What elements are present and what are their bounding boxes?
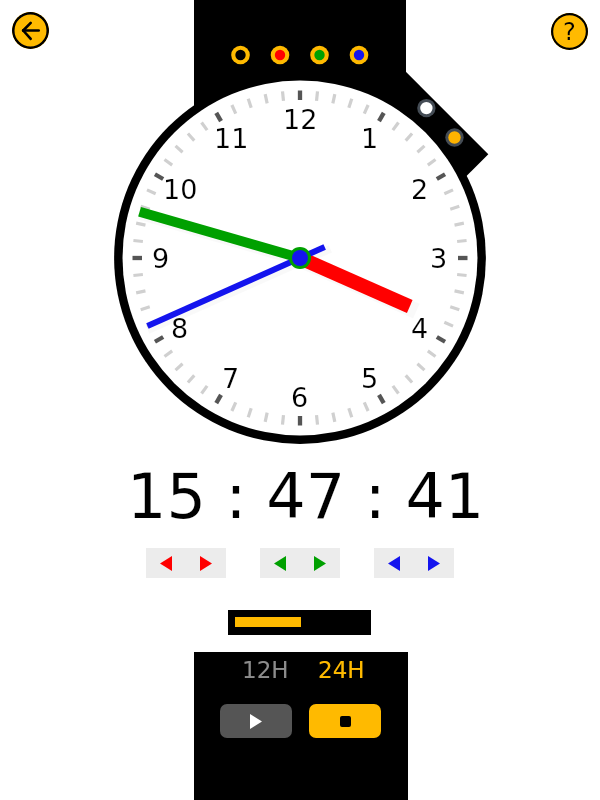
button[interactable]: Decrease	[260, 548, 300, 578]
button[interactable]: Decrease	[374, 548, 414, 578]
button[interactable]: 24H	[314, 653, 369, 688]
staticText: 15 : 47 : 41	[127, 460, 485, 532]
button[interactable]: Back	[12, 12, 49, 49]
staticText: 8	[171, 313, 189, 344]
staticText: 4	[411, 313, 429, 344]
staticText: 6	[291, 382, 309, 413]
staticText: 24H	[318, 657, 365, 684]
button[interactable]: Increase	[300, 548, 340, 578]
button[interactable]: Increase	[414, 548, 454, 578]
button[interactable]: 12H	[238, 653, 293, 688]
button[interactable]: Stop	[309, 704, 381, 738]
staticText: 5	[361, 363, 379, 394]
staticText: 12	[283, 104, 318, 135]
staticText: ?	[563, 18, 576, 46]
staticText: 11	[214, 123, 249, 154]
staticText: 9	[152, 243, 170, 274]
button[interactable]: Play	[220, 704, 292, 738]
staticText: 1	[361, 123, 379, 154]
staticText: 10	[163, 174, 198, 205]
button[interactable]: Decrease	[146, 548, 186, 578]
staticText: 7	[222, 363, 240, 394]
staticText: 12H	[242, 657, 289, 684]
button[interactable]: Increase	[186, 548, 226, 578]
staticText: 2	[411, 174, 429, 205]
staticText: 3	[430, 243, 448, 274]
button[interactable]: Help	[551, 13, 588, 50]
